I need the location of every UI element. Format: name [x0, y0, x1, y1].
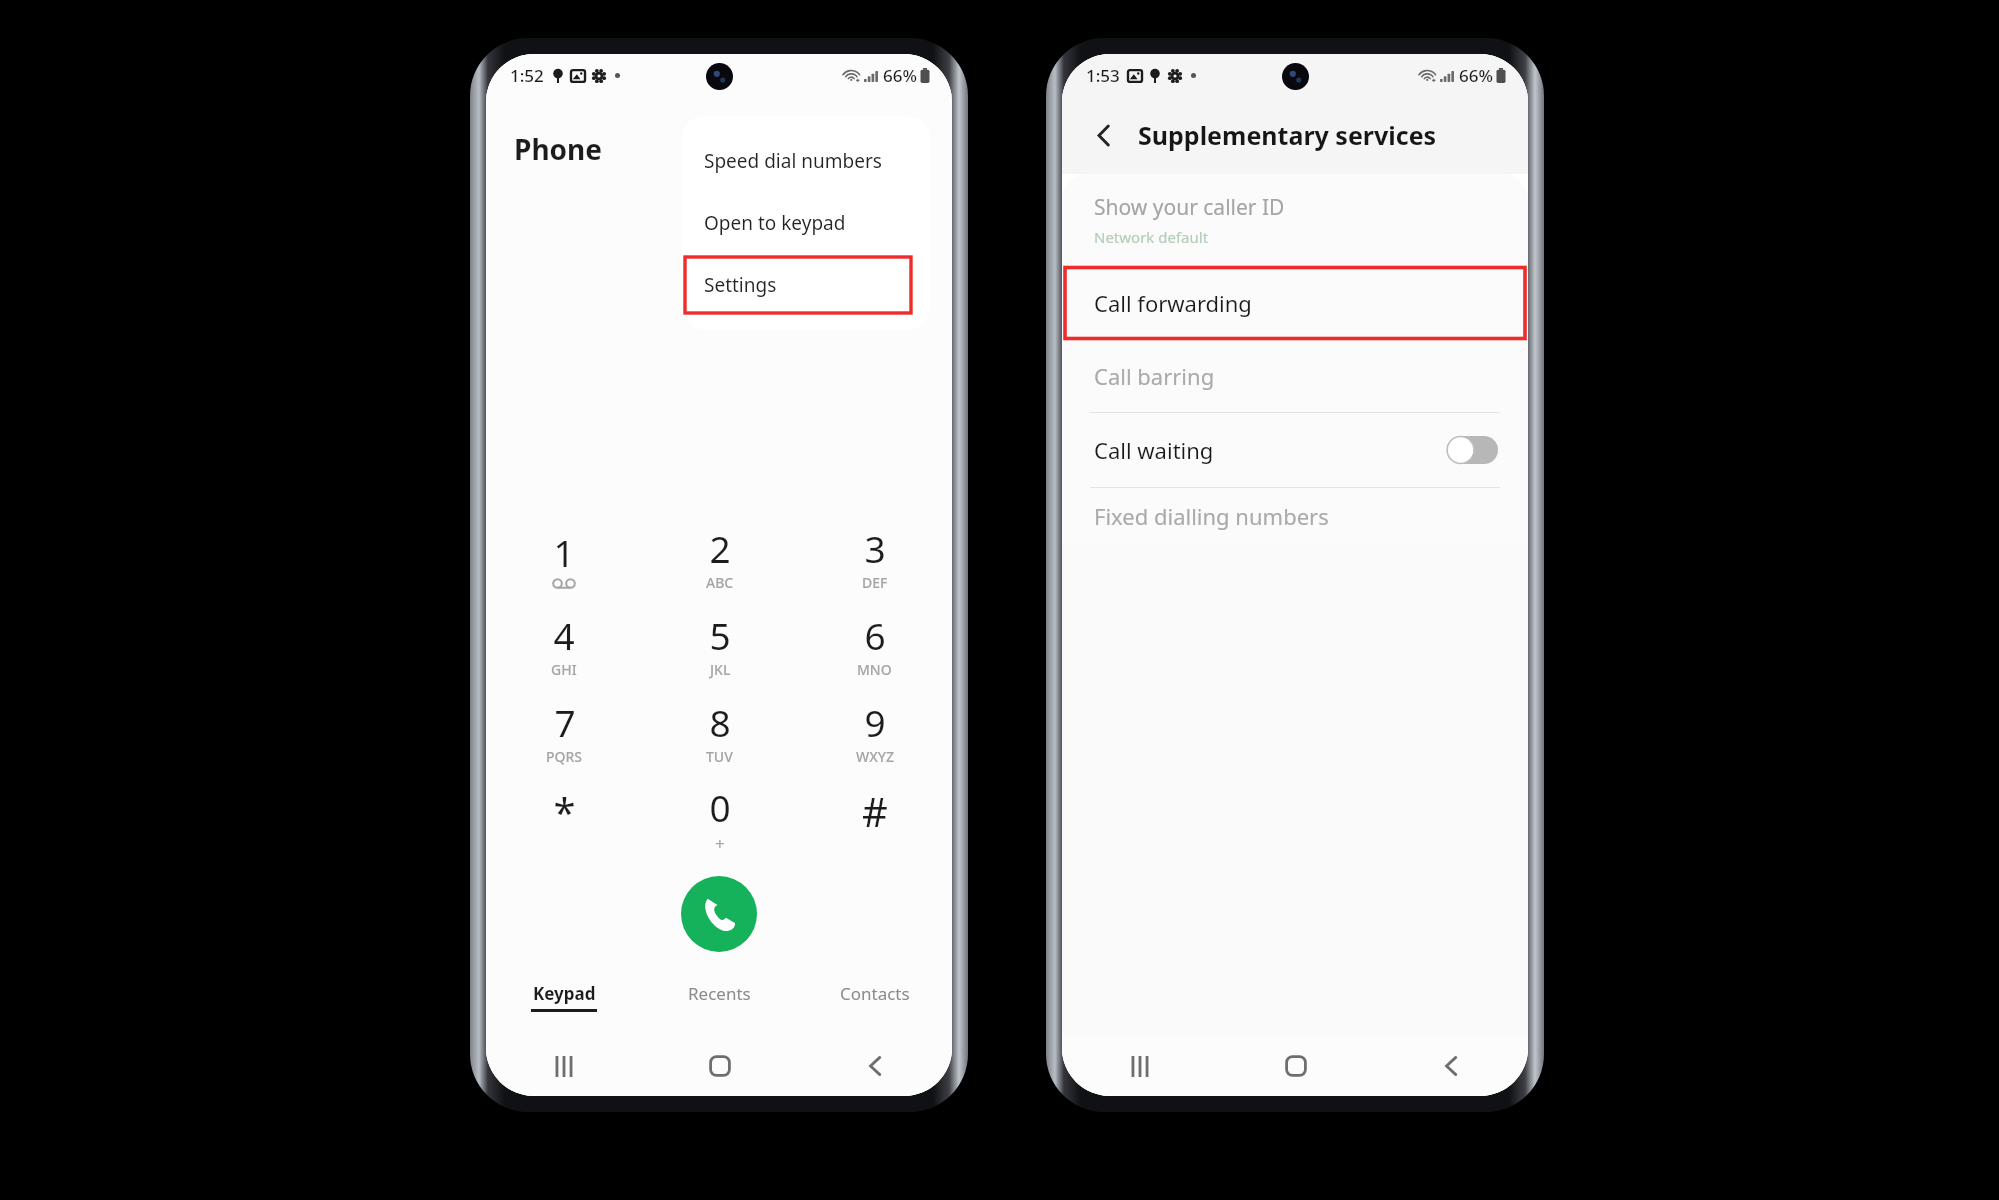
button[interactable]: * — [486, 775, 642, 862]
button[interactable]: Speed dial numbers — [682, 130, 930, 192]
staticText: JKL — [710, 660, 731, 679]
button[interactable]: 4 — [486, 601, 642, 688]
staticText: PQRS — [546, 747, 583, 766]
staticText: Open to keypad — [704, 210, 846, 236]
button[interactable]: Navigate up — [1084, 116, 1122, 154]
staticText: 7 — [554, 697, 576, 747]
staticText: 9 — [864, 697, 886, 747]
staticText: GHI — [551, 660, 577, 679]
staticText: 8 — [709, 697, 731, 747]
staticText: Network default — [1094, 227, 1209, 247]
button[interactable]: Fixed dialling numbers — [1062, 488, 1528, 544]
button[interactable]: Home — [1218, 1036, 1373, 1096]
button[interactable]: 9 — [797, 688, 952, 775]
button[interactable]: # — [797, 775, 952, 862]
staticText: Recents — [688, 982, 751, 1005]
button[interactable]: 0 — [642, 775, 797, 862]
button[interactable]: Recent apps — [486, 1036, 642, 1096]
button[interactable]: 5 — [642, 601, 797, 688]
staticText: Supplementary services — [1138, 118, 1437, 152]
staticText: MNO — [857, 660, 892, 679]
staticText: 1:53 — [1086, 64, 1120, 87]
button[interactable]: Recents — [642, 974, 797, 1013]
staticText: Call forwarding — [1094, 288, 1252, 318]
staticText: TUV — [706, 747, 733, 766]
button[interactable]: Show your caller ID — [1062, 174, 1528, 266]
staticText: Contacts — [840, 982, 910, 1005]
button[interactable]: Recent apps — [1062, 1036, 1218, 1096]
staticText: 1:52 — [510, 64, 544, 87]
staticText: Fixed dialling numbers — [1094, 501, 1329, 531]
button[interactable]: Back — [1373, 1036, 1528, 1096]
button[interactable]: 3 — [797, 514, 952, 601]
button[interactable]: Call waiting toggle — [1446, 436, 1498, 464]
staticText: 2 — [709, 523, 731, 573]
staticText: 66% — [883, 64, 917, 87]
staticText: + — [715, 832, 725, 855]
staticText: Show your caller ID — [1094, 193, 1285, 222]
staticText: WXYZ — [856, 747, 894, 766]
staticText: Speed dial numbers — [704, 148, 882, 174]
button[interactable]: Contacts — [797, 974, 952, 1013]
button[interactable]: Call forwarding — [1062, 266, 1528, 340]
button[interactable]: Back — [797, 1036, 952, 1096]
staticText: Keypad — [533, 982, 596, 1005]
button[interactable]: Settings — [682, 254, 930, 316]
staticText: 5 — [709, 610, 731, 660]
button[interactable]: Home — [642, 1036, 797, 1096]
staticText: ABC — [706, 573, 734, 592]
staticText: * — [553, 784, 576, 838]
staticText: 3 — [864, 523, 886, 573]
staticText: 1 — [553, 527, 575, 577]
staticText: Call waiting — [1094, 435, 1214, 465]
button[interactable]: Call barring — [1062, 340, 1528, 412]
staticText: # — [862, 784, 888, 838]
button[interactable]: 8 — [642, 688, 797, 775]
button[interactable]: 1 — [486, 514, 642, 601]
button[interactable]: Keypad — [486, 974, 642, 1020]
staticText: 6 — [864, 610, 886, 660]
staticText: 66% — [1459, 64, 1493, 87]
staticText: DEF — [862, 573, 888, 592]
staticText: 0 — [709, 782, 731, 832]
button[interactable]: 6 — [797, 601, 952, 688]
button[interactable]: 7 — [486, 688, 642, 775]
staticText: Settings — [704, 272, 777, 298]
staticText: Phone — [514, 130, 603, 168]
button[interactable]: Call waiting — [1062, 413, 1528, 487]
button[interactable]: Open to keypad — [682, 192, 930, 254]
staticText: 4 — [553, 610, 575, 660]
button[interactable]: 2 — [642, 514, 797, 601]
button[interactable]: Call — [681, 876, 757, 952]
staticText: Call barring — [1094, 361, 1215, 391]
